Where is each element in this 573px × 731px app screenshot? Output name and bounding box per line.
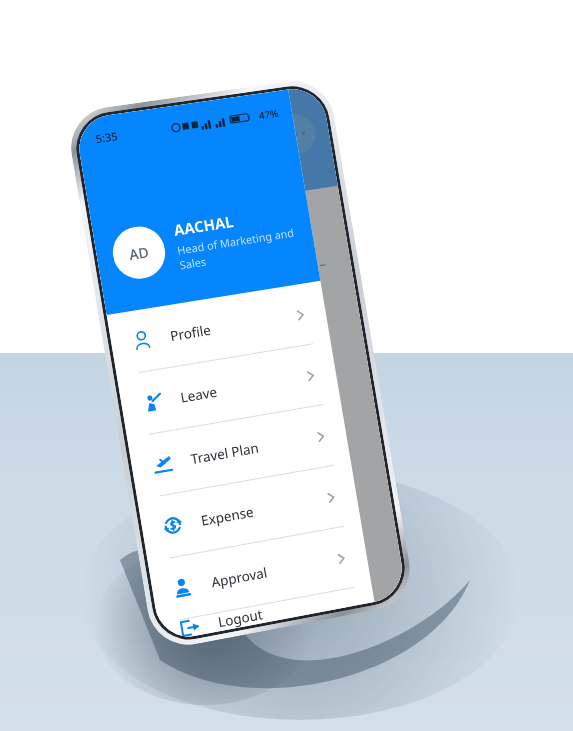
button[interactable]: Logout	[158, 584, 374, 642]
staticText: Approval	[210, 563, 269, 591]
button[interactable]: Leave	[117, 341, 341, 438]
staticText: AD	[128, 242, 151, 264]
staticText: 2025	[117, 229, 150, 251]
button[interactable]: Profile	[106, 281, 330, 377]
staticText: Travel Plan	[189, 439, 260, 468]
staticText: Expense	[200, 503, 255, 530]
staticText: Important	[122, 251, 192, 279]
button[interactable]: AD	[109, 202, 300, 282]
staticText: AACHAL	[172, 211, 235, 240]
staticText: 47%	[258, 106, 279, 122]
button[interactable]: Expense	[137, 463, 361, 562]
button[interactable]: Approval	[148, 523, 371, 624]
staticText: Profile	[169, 321, 212, 345]
staticText: Head of Marketing and Sales	[176, 224, 300, 272]
staticText: 5:35	[94, 128, 119, 146]
staticText: Logout	[217, 605, 264, 631]
button[interactable]: Travel Plan	[127, 402, 351, 500]
staticText: Leave	[179, 383, 218, 407]
button[interactable]: More options	[273, 112, 318, 157]
